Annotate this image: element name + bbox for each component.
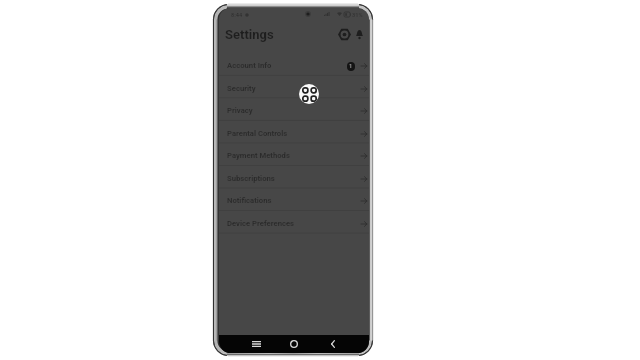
staticText: Payment Methods xyxy=(227,151,290,160)
button[interactable]: Payment Methods xyxy=(219,143,369,166)
staticText: 31% xyxy=(352,12,363,19)
button[interactable]: Recent apps xyxy=(248,336,264,352)
button[interactable]: Parental Controls xyxy=(219,121,369,144)
staticText: 8:44 xyxy=(231,12,243,19)
button[interactable]: Account Info xyxy=(219,53,369,76)
staticText: Privacy xyxy=(227,106,253,115)
button[interactable]: Notifications xyxy=(351,26,367,42)
button[interactable]: Notifications xyxy=(219,188,369,211)
staticText: 1 xyxy=(349,63,353,70)
staticText: Account Info xyxy=(227,61,272,70)
staticText: Subscriptions xyxy=(227,174,275,183)
staticText: Security xyxy=(227,84,256,93)
button[interactable]: Settings xyxy=(336,26,352,42)
button[interactable]: Back xyxy=(325,336,341,352)
button[interactable]: Subscriptions xyxy=(219,166,369,189)
staticText: Settings xyxy=(225,27,274,42)
button[interactable]: Apps xyxy=(299,84,319,104)
staticText: Notifications xyxy=(227,196,272,205)
button[interactable]: Privacy xyxy=(219,98,369,121)
staticText: Parental Controls xyxy=(227,129,288,138)
button[interactable]: Device Preferences xyxy=(219,211,369,234)
button[interactable]: Home xyxy=(286,336,302,352)
button[interactable]: Security xyxy=(219,76,369,99)
staticText: Device Preferences xyxy=(227,219,295,228)
